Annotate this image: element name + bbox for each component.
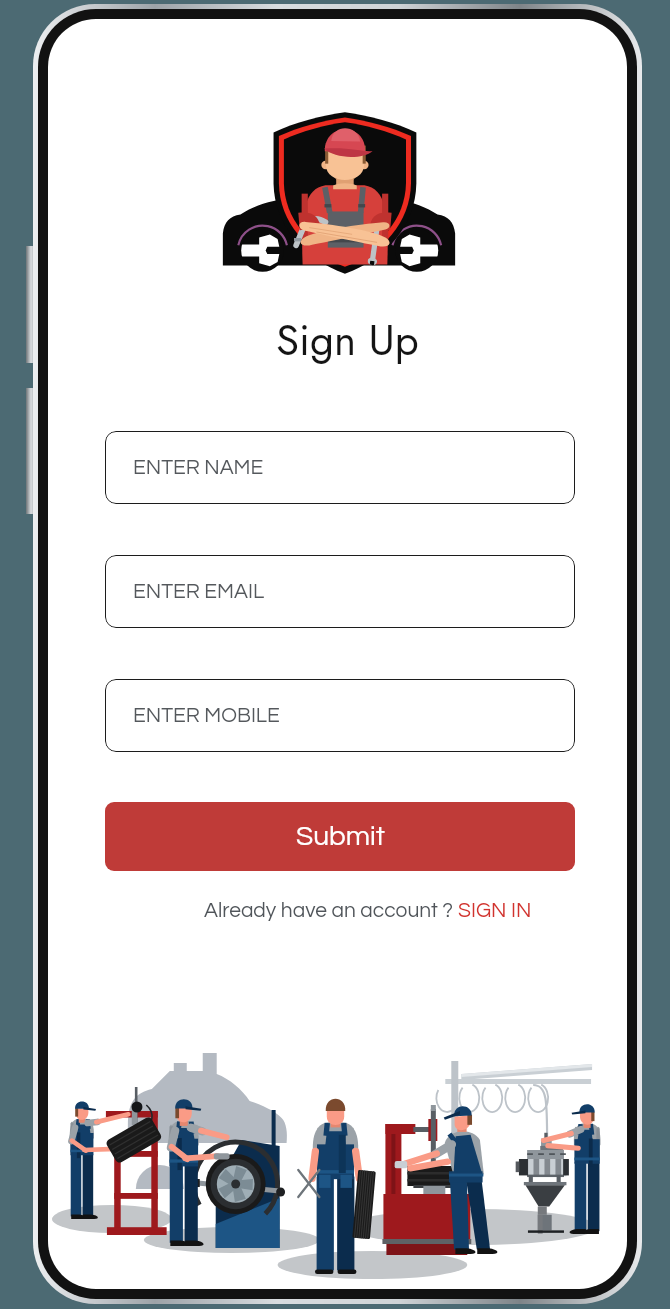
button[interactable]: ENTER MOBILE: [105, 679, 575, 752]
staticText: Already have an account ?: [204, 900, 458, 922]
button[interactable]: Submit: [105, 802, 575, 871]
staticText: Sign Up: [276, 310, 419, 371]
staticText: ENTER EMAIL: [133, 581, 265, 603]
staticText: ENTER NAME: [133, 457, 264, 479]
staticText: Submit: [296, 822, 385, 851]
button[interactable]: SIGN IN: [458, 900, 532, 922]
button[interactable]: ENTER EMAIL: [105, 555, 575, 628]
button[interactable]: ENTER NAME: [105, 431, 575, 504]
staticText: SIGN IN: [458, 900, 532, 922]
staticText: ENTER MOBILE: [133, 705, 280, 727]
